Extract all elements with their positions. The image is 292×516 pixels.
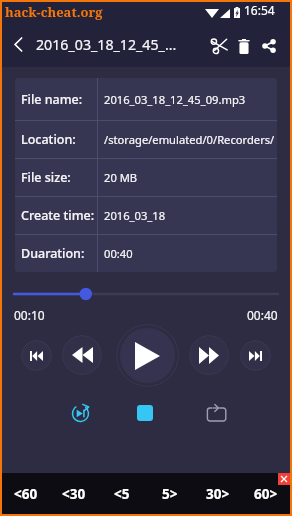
staticText: 2016_03_18_12_45_... (36, 35, 207, 54)
staticText: /storage/emulated/0/Recorders/ (104, 132, 275, 147)
button[interactable]: Stop (130, 398, 160, 428)
staticText: <60 (14, 485, 38, 503)
staticText: 00:10 (14, 307, 45, 323)
button[interactable]: Play (116, 324, 179, 387)
staticText: 16:54 (244, 2, 275, 18)
staticText: Duaration: (21, 245, 97, 262)
button[interactable]: Previous (21, 340, 52, 371)
button[interactable]: 60> (242, 473, 290, 514)
staticText: File size: (21, 169, 97, 186)
button[interactable]: <60 (2, 473, 50, 514)
button[interactable]: Cut (206, 22, 232, 67)
staticText: <30 (62, 485, 86, 503)
staticText: 5> (162, 485, 178, 503)
button[interactable]: Close ad (278, 473, 290, 485)
button[interactable]: Back (2, 22, 35, 67)
staticText: hack-cheat.org (5, 3, 103, 21)
staticText: Location: (21, 131, 97, 148)
button[interactable]: <30 (50, 473, 98, 514)
button[interactable]: Share (256, 22, 282, 67)
button[interactable]: 30> (194, 473, 242, 514)
staticText: <5 (114, 485, 130, 503)
button[interactable]: Seek bar (2, 287, 290, 301)
staticText: 20 MB (104, 170, 138, 185)
staticText: 30> (206, 485, 230, 503)
staticText: 00:40 (104, 246, 133, 261)
staticText: 00:40 (247, 307, 278, 323)
button[interactable]: Repeat once (65, 398, 95, 428)
button[interactable]: Next (240, 340, 271, 371)
button[interactable]: Rewind (62, 335, 102, 375)
staticText: Create time: (21, 207, 97, 224)
staticText: 2016_03_18_12_45_09.mp3 (104, 92, 246, 107)
staticText: File name: (21, 91, 97, 108)
button[interactable]: Forward (189, 335, 229, 375)
button[interactable]: Delete (232, 22, 256, 67)
button[interactable]: 5> (146, 473, 194, 514)
button[interactable]: <5 (98, 473, 146, 514)
staticText: 2016_03_18 (104, 208, 166, 223)
button[interactable]: Repeat (202, 398, 232, 428)
staticText: 60> (254, 485, 278, 503)
